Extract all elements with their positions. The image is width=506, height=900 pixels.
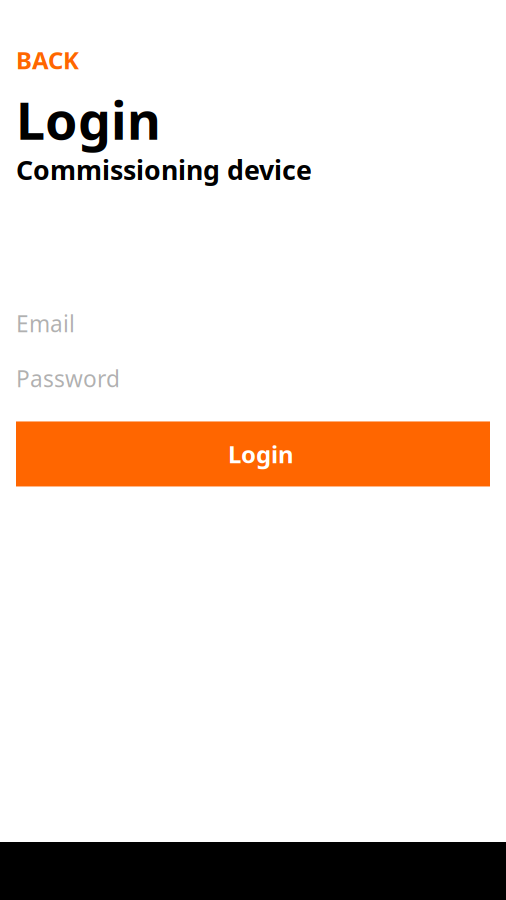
button[interactable]: Password [0,365,506,391]
staticText: Password [16,363,120,393]
button[interactable]: Login [16,421,490,486]
staticText: Email [16,308,75,338]
staticText: Login [228,438,294,470]
staticText: Commissioning device [16,152,312,187]
staticText: Login [16,85,161,154]
button[interactable]: Email [0,310,506,336]
staticText: BACK [16,44,79,76]
button[interactable]: BACK [0,47,91,73]
